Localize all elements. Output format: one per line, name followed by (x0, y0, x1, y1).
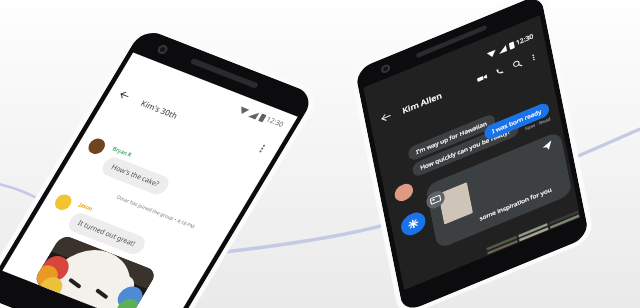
staticText: Kim's 30th (136, 85, 183, 133)
button[interactable]: Photo (517, 217, 548, 244)
staticText: Now · Read (522, 110, 554, 138)
staticText: Jason (76, 196, 97, 217)
button[interactable]: More options (525, 49, 542, 66)
staticText: 12:30 (512, 28, 537, 51)
button[interactable]: Call (491, 63, 508, 79)
button[interactable]: Video call (473, 69, 491, 87)
staticText: some inspiration for you (476, 169, 555, 239)
staticText: How quickly can you be ready? (417, 107, 514, 192)
button[interactable]: More options (251, 137, 274, 160)
staticText: Bryan R (110, 138, 136, 165)
button[interactable]: Photo (486, 229, 518, 257)
button[interactable]: Back (114, 85, 135, 105)
button[interactable]: Photo (518, 221, 549, 248)
staticText: I was born ready (489, 96, 545, 146)
button[interactable]: Gallery (419, 184, 452, 215)
staticText: I'm way up for Hawaiian (413, 103, 491, 172)
button[interactable]: Photo (549, 208, 580, 235)
button[interactable]: Back (376, 107, 396, 127)
button[interactable]: New conversation (392, 203, 435, 244)
button[interactable]: Search (509, 56, 526, 72)
staticText: It turned out great! (73, 199, 140, 269)
staticText: How's the cake? (107, 146, 164, 206)
button[interactable]: Send (537, 136, 558, 156)
button[interactable]: Photo (548, 204, 579, 231)
staticText: Kim Allen (398, 80, 446, 124)
button[interactable]: Photo (486, 233, 519, 261)
staticText: Omar has joined the group • 4:18 PM (113, 167, 198, 257)
staticText: 12:30 (261, 109, 288, 135)
